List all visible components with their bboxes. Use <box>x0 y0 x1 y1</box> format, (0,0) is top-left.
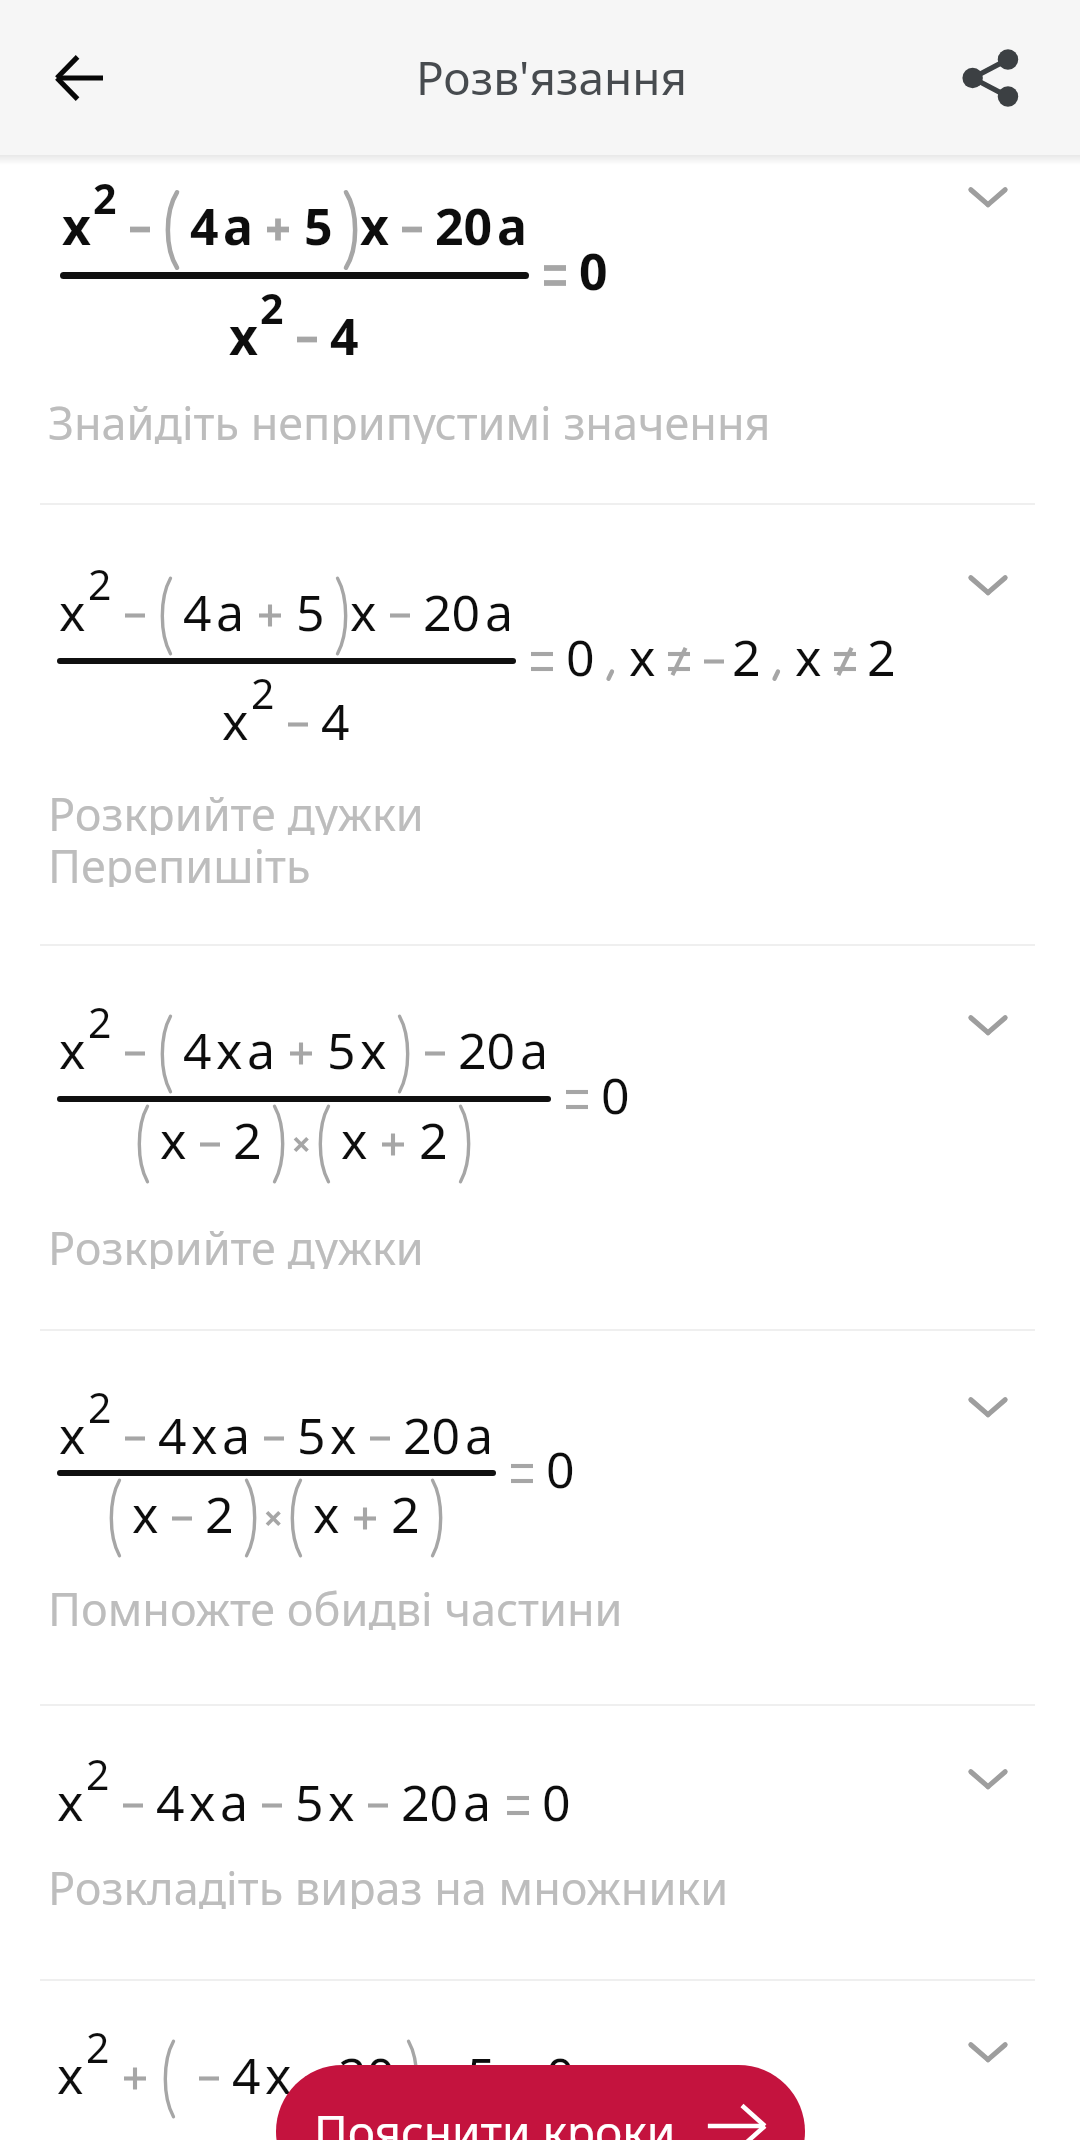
staticText: 2 <box>86 2019 110 2075</box>
staticText: Знайдіть неприпустимі значення <box>48 392 771 444</box>
staticText: 2 <box>86 1746 110 1802</box>
staticText: 0 <box>579 237 608 305</box>
staticText: 5 <box>297 1401 326 1469</box>
staticText: 2 <box>260 280 284 336</box>
staticText: 2 <box>93 170 117 226</box>
staticText: x <box>160 1106 187 1174</box>
button[interactable]: x <box>0 1706 1080 1979</box>
button[interactable]: Expand step <box>954 163 1022 231</box>
staticText: x <box>59 578 86 646</box>
staticText: a <box>216 578 245 646</box>
staticText: x <box>62 192 91 260</box>
button[interactable]: x <box>0 1331 1080 1704</box>
staticText: 2 <box>867 623 896 691</box>
staticText: 4 <box>232 2041 261 2109</box>
staticText: x <box>341 1106 368 1174</box>
staticText: 0 <box>546 2041 575 2109</box>
staticText: Розв'язання <box>416 46 688 109</box>
staticText: x <box>328 1768 355 1836</box>
staticText: 2 <box>88 994 112 1050</box>
staticText: x <box>360 192 389 260</box>
staticText: 0 <box>542 1768 571 1836</box>
staticText: x <box>313 1480 340 1548</box>
button[interactable]: Expand step <box>954 2018 1022 2086</box>
staticText: 20 <box>423 578 481 646</box>
button[interactable]: x <box>0 946 1080 1329</box>
staticText: x <box>191 1401 218 1469</box>
staticText: x <box>265 2041 292 2109</box>
staticText: Розкрийте дужки <box>48 783 424 835</box>
staticText: 4 <box>183 1016 212 1084</box>
staticText: x <box>629 623 656 691</box>
staticText: a <box>465 1401 494 1469</box>
staticText: x <box>216 1016 243 1084</box>
staticText: 0 <box>601 1061 630 1129</box>
button[interactable]: Share <box>942 30 1038 126</box>
staticText: a <box>520 1016 549 1084</box>
staticText: a <box>223 192 253 260</box>
staticText: 2 <box>391 1480 420 1548</box>
staticText: Перепишіть <box>48 835 311 887</box>
staticText: x <box>350 578 377 646</box>
button[interactable]: x <box>0 1981 1080 2140</box>
staticText: a <box>497 192 527 260</box>
button[interactable]: Expand step <box>954 1373 1022 1441</box>
staticText: 2 <box>251 665 275 721</box>
staticText: a <box>485 578 514 646</box>
staticText: Помножте обидві частини <box>48 1578 623 1630</box>
button[interactable]: x <box>0 155 1080 503</box>
staticText: 4 <box>321 687 350 755</box>
staticText: x <box>795 623 822 691</box>
staticText: x <box>229 302 258 370</box>
staticText: x <box>360 1016 387 1084</box>
staticText: 20 <box>458 1016 516 1084</box>
staticText: x <box>59 1016 86 1084</box>
staticText: 2 <box>732 623 761 691</box>
staticText: a <box>220 1768 249 1836</box>
staticText: 4 <box>330 302 359 370</box>
button[interactable]: x <box>0 505 1080 944</box>
staticText: 5 <box>296 578 325 646</box>
staticText: 20 <box>338 2041 396 2109</box>
staticText: 5 <box>327 1016 356 1084</box>
staticText: Пояснити кроки <box>314 2100 676 2140</box>
staticText: x <box>189 1768 216 1836</box>
staticText: 5 <box>304 192 333 260</box>
staticText: 20 <box>403 1401 461 1469</box>
staticText: x <box>222 687 249 755</box>
staticText: 4 <box>190 192 219 260</box>
staticText: 20 <box>401 1768 459 1836</box>
staticText: 2 <box>419 1106 448 1174</box>
staticText: 2 <box>88 1379 112 1435</box>
staticText: a <box>463 1768 492 1836</box>
staticText: 2 <box>233 1106 262 1174</box>
button[interactable]: Expand step <box>954 551 1022 619</box>
staticText: x <box>57 1768 84 1836</box>
staticText: 2 <box>205 1480 234 1548</box>
button[interactable]: Expand step <box>954 1745 1022 1813</box>
staticText: 4 <box>156 1768 185 1836</box>
button[interactable]: Back <box>31 30 127 126</box>
staticText: Розкладіть вираз на множники <box>48 1857 729 1909</box>
staticText: 5 <box>467 2041 496 2109</box>
staticText: 0 <box>566 623 595 691</box>
staticText: x <box>57 2041 84 2109</box>
staticText: x <box>59 1401 86 1469</box>
staticText: 2 <box>88 556 112 612</box>
staticText: x <box>132 1480 159 1548</box>
button[interactable]: Expand step <box>954 991 1022 1059</box>
staticText: 5 <box>295 1768 324 1836</box>
staticText: Розкрийте дужки <box>48 1217 424 1269</box>
staticText: a <box>222 1401 251 1469</box>
staticText: 0 <box>546 1435 575 1503</box>
button[interactable]: Пояснити кроки <box>276 2065 805 2140</box>
staticText: x <box>330 1401 357 1469</box>
staticText: 4 <box>183 578 212 646</box>
staticText: 20 <box>435 192 493 260</box>
staticText: 4 <box>158 1401 187 1469</box>
staticText: a <box>247 1016 276 1084</box>
